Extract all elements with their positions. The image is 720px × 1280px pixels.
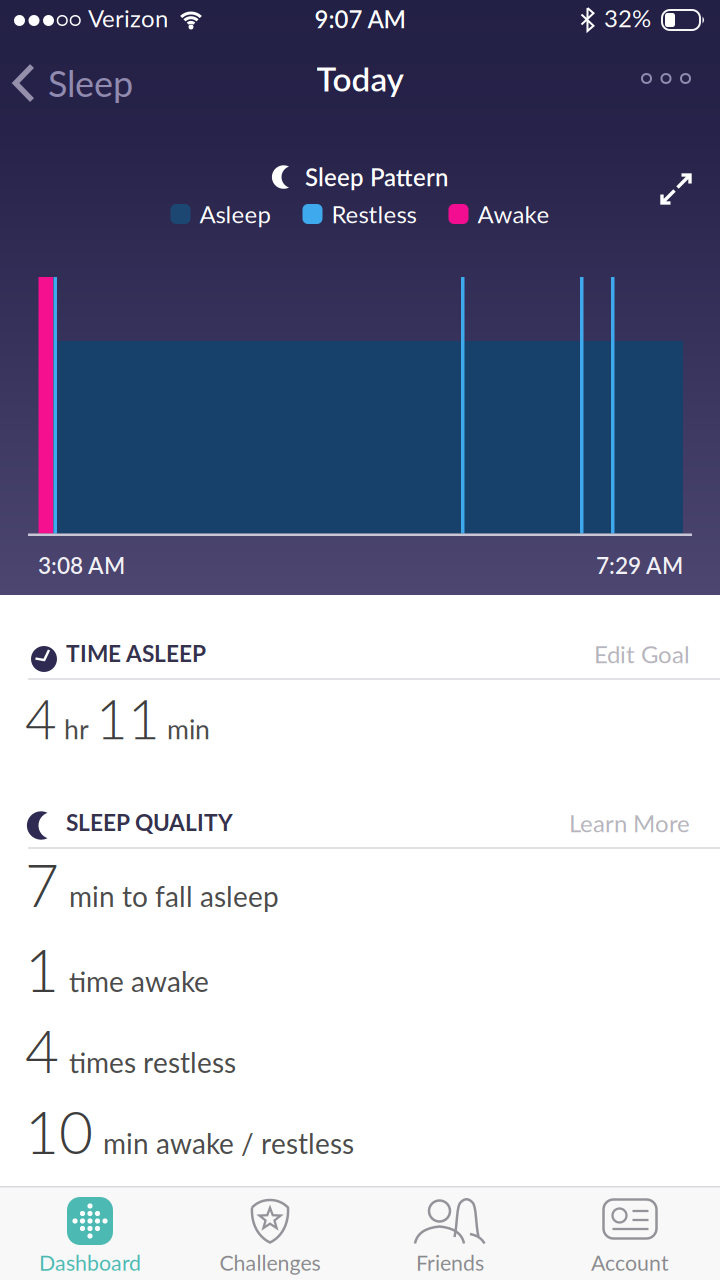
- staticText: Awake: [477, 200, 549, 228]
- staticText: Sleep Pattern: [305, 163, 448, 191]
- staticText: Today: [316, 59, 403, 98]
- staticText: 32%: [604, 4, 651, 32]
- staticText: 7: [25, 850, 59, 919]
- staticText: Account: [591, 1250, 669, 1275]
- staticText: 3:08 AM: [38, 552, 125, 578]
- staticText: 10: [25, 1097, 93, 1166]
- button[interactable]: Dashboard: [0, 1197, 180, 1275]
- staticText: 9:07 AM: [314, 5, 405, 33]
- staticText: times restless: [69, 1046, 236, 1079]
- button[interactable]: Account: [540, 1197, 720, 1275]
- staticText: 11: [96, 686, 160, 750]
- button[interactable]: Challenges: [180, 1197, 360, 1275]
- staticText: 1: [25, 935, 59, 1004]
- staticText: Challenges: [219, 1250, 320, 1275]
- staticText: Sleep: [48, 62, 133, 104]
- staticText: Restless: [331, 200, 416, 228]
- button[interactable]: Edit Goal: [594, 630, 690, 668]
- staticText: Asleep: [199, 200, 270, 228]
- staticText: SLEEP QUALITY: [66, 809, 233, 835]
- button[interactable]: Sleep: [0, 62, 133, 104]
- staticText: Edit Goal: [594, 640, 690, 668]
- staticText: Verizon: [88, 4, 168, 32]
- staticText: min awake / restless: [103, 1127, 354, 1160]
- button[interactable]: Friends: [360, 1197, 540, 1275]
- staticText: TIME ASLEEP: [66, 640, 206, 666]
- staticText: Friends: [416, 1250, 484, 1275]
- staticText: Dashboard: [39, 1250, 141, 1275]
- staticText: 4: [25, 686, 57, 750]
- staticText: min to fall asleep: [69, 880, 279, 913]
- staticText: time awake: [69, 965, 209, 998]
- button[interactable]: Learn More: [569, 799, 690, 837]
- staticText: hr: [64, 713, 89, 744]
- staticText: 4: [25, 1016, 59, 1085]
- staticText: min: [167, 713, 210, 744]
- staticText: 7:29 AM: [596, 552, 683, 578]
- button[interactable]: [632, 64, 700, 93]
- staticText: Learn More: [569, 809, 690, 837]
- button[interactable]: [652, 165, 700, 213]
